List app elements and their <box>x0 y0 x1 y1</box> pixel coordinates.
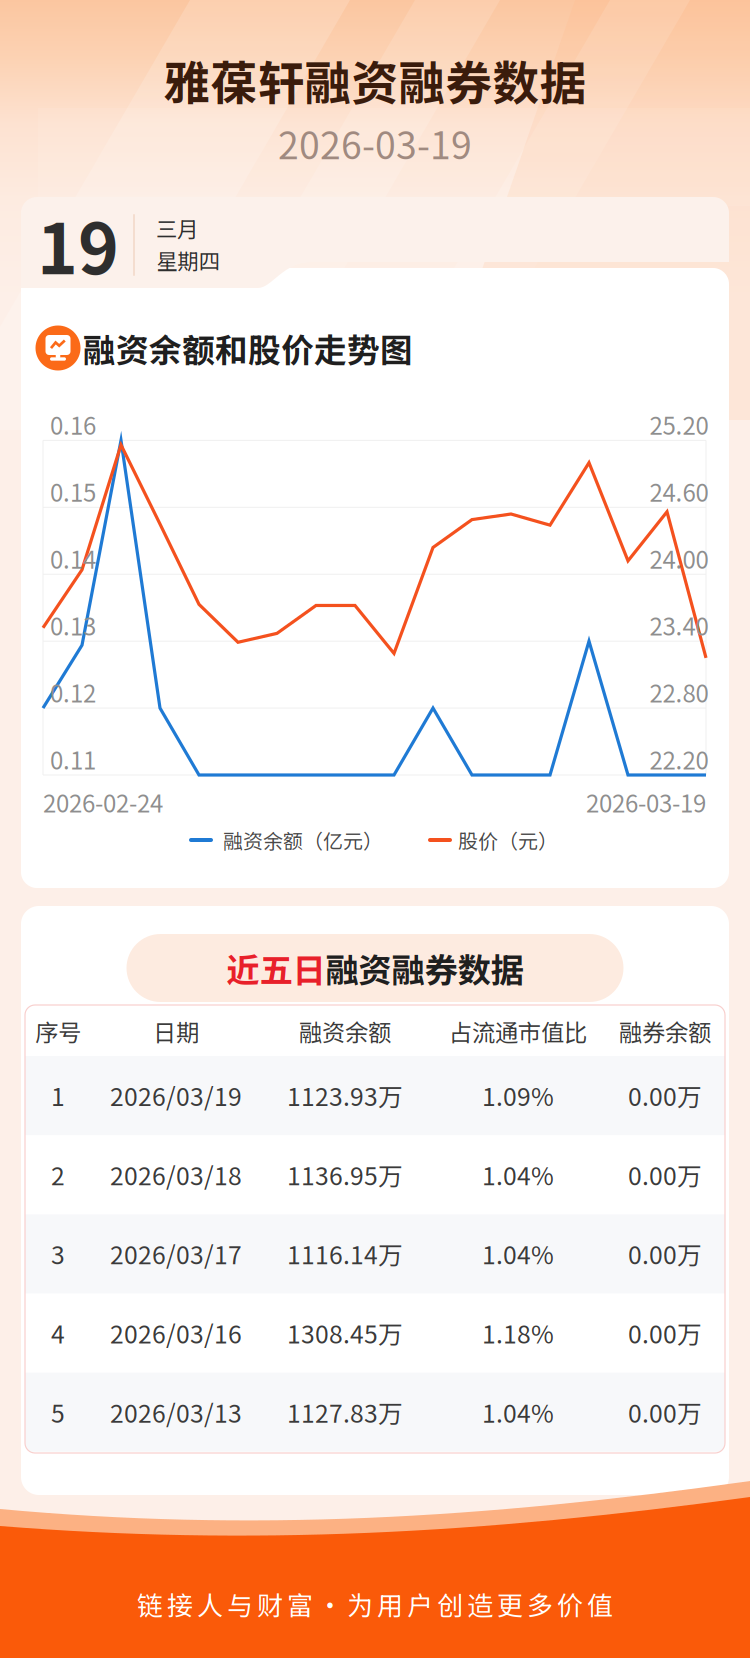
staticText: 1.09% <box>482 1077 554 1113</box>
staticText: 融资余额和股价走势图 <box>83 324 413 372</box>
staticText: 1.04% <box>482 1236 554 1271</box>
staticText: 3 <box>51 1236 65 1271</box>
staticText: 1.04% <box>482 1394 554 1430</box>
staticText: 2026-03-19 <box>586 785 706 819</box>
staticText: 0.00万 <box>628 1157 702 1192</box>
staticText: 星期四 <box>156 245 219 275</box>
staticText: 0.13 <box>50 608 96 643</box>
staticText: 1136.95万 <box>287 1157 403 1192</box>
staticText: 0.16 <box>50 407 96 442</box>
staticText: 股价（元） <box>458 825 558 854</box>
staticText: 0.11 <box>50 742 96 776</box>
staticText: 2026/03/13 <box>110 1394 242 1430</box>
staticText: 25.20 <box>649 407 708 442</box>
staticText: 占流通市值比 <box>449 1014 587 1048</box>
staticText: 融资余额 <box>299 1014 391 1048</box>
staticText: 1 <box>51 1077 65 1113</box>
staticText: 19 <box>37 194 119 294</box>
staticText: 序号 <box>35 1014 81 1048</box>
staticText: 1127.83万 <box>287 1394 403 1430</box>
staticText: 0.00万 <box>628 1077 702 1113</box>
staticText: 2026/03/17 <box>110 1236 242 1271</box>
staticText: 5 <box>51 1394 65 1430</box>
staticText: 0.00万 <box>628 1394 702 1430</box>
staticText: 2026/03/18 <box>110 1157 242 1192</box>
staticText: 0.12 <box>50 675 96 709</box>
staticText: 22.20 <box>649 742 708 776</box>
staticText: 1116.14万 <box>287 1236 403 1271</box>
staticText: 1123.93万 <box>287 1077 403 1113</box>
staticText: 24.60 <box>649 474 708 509</box>
staticText: 24.00 <box>649 541 708 576</box>
staticText: 0.15 <box>50 474 96 509</box>
staticText: 三月 <box>156 213 198 243</box>
staticText: 日期 <box>153 1014 199 1048</box>
staticText: 近五日 <box>226 944 325 992</box>
staticText: 0.00万 <box>628 1236 702 1271</box>
staticText: 0.00万 <box>628 1315 702 1351</box>
staticText: 链接人与财富·为用户创造更多价值 <box>137 1585 613 1623</box>
staticText: 23.40 <box>649 608 708 643</box>
staticText: 2026/03/19 <box>110 1077 242 1113</box>
staticText: 1.04% <box>482 1157 554 1192</box>
staticText: 2 <box>51 1157 65 1192</box>
staticText: 1.18% <box>482 1315 554 1351</box>
staticText: 融券余额 <box>619 1014 711 1048</box>
staticText: 融资融券数据 <box>325 944 523 992</box>
staticText: 雅葆轩融资融券数据 <box>163 46 586 114</box>
staticText: 4 <box>51 1315 65 1351</box>
staticText: 2026/03/16 <box>110 1315 242 1351</box>
staticText: 融资余额（亿元） <box>223 825 383 854</box>
staticText: 0.14 <box>50 541 96 576</box>
staticText: 2026-02-24 <box>43 785 163 819</box>
staticText: 22.80 <box>649 675 708 709</box>
staticText: 2026-03-19 <box>278 116 472 170</box>
staticText: 1308.45万 <box>287 1315 403 1351</box>
